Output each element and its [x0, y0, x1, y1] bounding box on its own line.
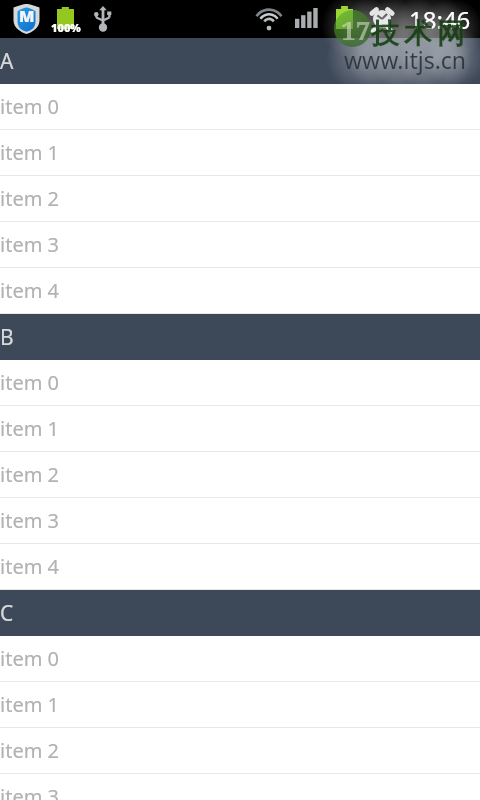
staticText: 技术网: [371, 16, 470, 51]
staticText: item 4: [0, 553, 59, 580]
staticText: item 1: [0, 415, 59, 442]
button[interactable]: item 3: [0, 498, 480, 544]
staticText: www.itjs.cn: [344, 44, 467, 75]
button[interactable]: item 1: [0, 130, 480, 176]
other: Alarm set: [370, 4, 394, 32]
staticText: item 2: [0, 737, 59, 764]
button[interactable]: item 0: [0, 636, 480, 682]
button[interactable]: item 0: [0, 84, 480, 130]
button[interactable]: item 3: [0, 774, 480, 800]
staticText: item 3: [0, 507, 59, 534]
staticText: B: [0, 323, 14, 352]
staticText: item 2: [0, 185, 59, 212]
other: Security: [12, 3, 41, 35]
button[interactable]: item 0: [0, 360, 480, 406]
other: Wi-Fi: [254, 7, 284, 29]
staticText: item 4: [0, 277, 59, 304]
staticText: item 1: [0, 139, 59, 166]
staticText: item 0: [0, 93, 59, 120]
staticText: 100%: [51, 20, 81, 35]
other: Signal strength: [295, 8, 318, 28]
staticText: item 1: [0, 691, 59, 718]
other: Battery 100 percent: [57, 7, 74, 29]
button[interactable]: item 3: [0, 222, 480, 268]
button[interactable]: item 4: [0, 268, 480, 314]
staticText: A: [0, 47, 14, 76]
other: Battery: [336, 6, 353, 29]
button[interactable]: item 1: [0, 406, 480, 452]
staticText: C: [0, 599, 14, 628]
staticText: item 3: [0, 231, 59, 258]
button[interactable]: item 2: [0, 452, 480, 498]
staticText: item 0: [0, 645, 59, 672]
button[interactable]: C: [0, 590, 480, 636]
button[interactable]: item 2: [0, 728, 480, 774]
button[interactable]: item 4: [0, 544, 480, 590]
staticText: 17: [341, 12, 371, 47]
button[interactable]: A: [0, 38, 480, 84]
staticText: M: [19, 5, 35, 27]
button[interactable]: item 2: [0, 176, 480, 222]
other: USB connected: [95, 6, 111, 31]
staticText: item 3: [0, 783, 59, 800]
staticText: item 2: [0, 461, 59, 488]
staticText: item 0: [0, 369, 59, 396]
button[interactable]: B: [0, 314, 480, 360]
staticText: 18:46: [409, 3, 471, 36]
button[interactable]: item 1: [0, 682, 480, 728]
